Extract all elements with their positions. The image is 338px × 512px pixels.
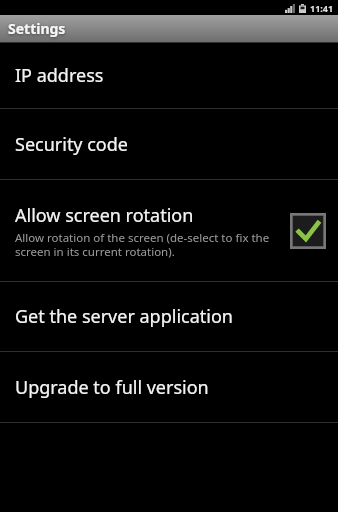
staticText: IP address xyxy=(15,63,104,88)
button[interactable]: IP address xyxy=(0,43,338,108)
staticText: Allow rotation of the screen (de-select … xyxy=(15,230,274,259)
button[interactable]: Allow screen rotation xyxy=(0,180,338,281)
button[interactable]: Upgrade to full version xyxy=(0,352,338,422)
button[interactable]: Security code xyxy=(0,109,338,179)
staticText: 11:41 xyxy=(310,2,334,14)
staticText: Upgrade to full version xyxy=(15,375,209,400)
staticText: Settings xyxy=(8,19,66,38)
button[interactable]: Allow screen rotation checkbox xyxy=(278,180,338,281)
staticText: Get the server application xyxy=(15,304,233,329)
staticText: Allow screen rotation xyxy=(15,203,194,228)
staticText: Security code xyxy=(15,132,128,157)
button[interactable]: Get the server application xyxy=(0,282,338,351)
